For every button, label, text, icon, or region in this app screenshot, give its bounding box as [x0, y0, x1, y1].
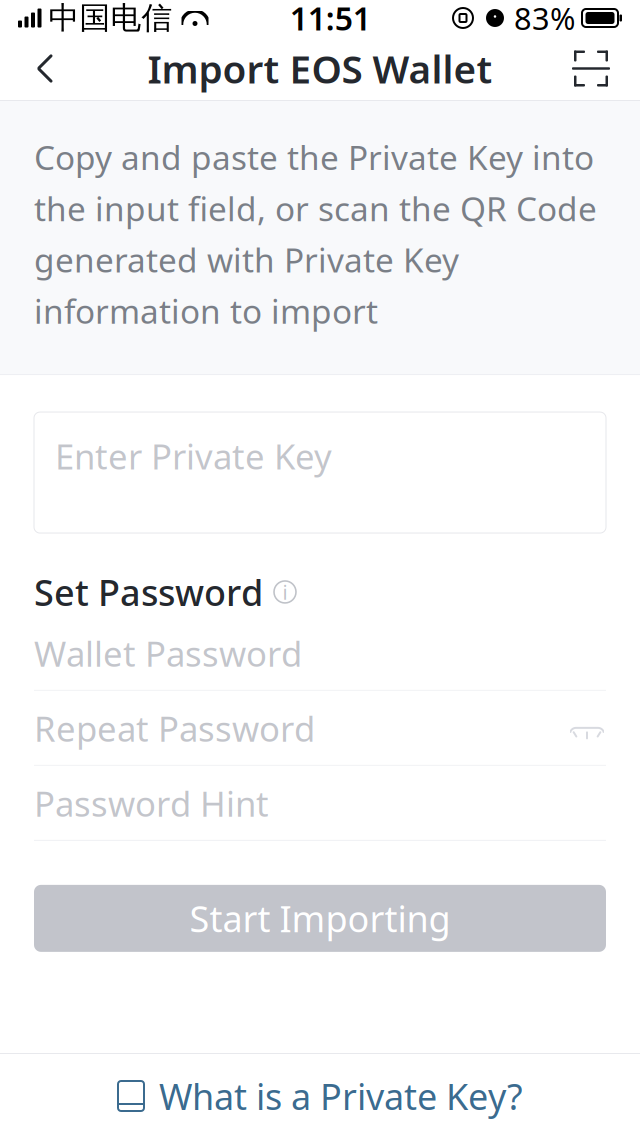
staticText: 中国电信	[48, 0, 172, 37]
staticText: i	[282, 579, 287, 605]
staticText: 11:51	[290, 0, 371, 39]
staticText: Import EOS Wallet	[147, 43, 492, 94]
staticText: Password Hint	[34, 780, 269, 826]
staticText: Copy and paste the Private Key into the …	[34, 135, 597, 333]
staticText: Enter Private Key	[55, 433, 332, 479]
staticText: Wallet Password	[34, 630, 302, 676]
button[interactable]: Repeat Password	[34, 691, 606, 766]
button[interactable]: Start Importing	[34, 885, 606, 952]
button[interactable]: Back	[14, 36, 76, 101]
staticText: Set Password	[34, 568, 263, 616]
staticText: Repeat Password	[34, 705, 315, 751]
button[interactable]: Scan QR Code	[556, 36, 626, 101]
staticText: What is a Private Key?	[159, 1072, 523, 1120]
staticText: Start Importing	[189, 894, 450, 942]
button[interactable]: Wallet Password	[34, 616, 606, 691]
staticText: 83%	[514, 0, 575, 38]
button[interactable]: Password Hint	[34, 766, 606, 841]
button[interactable]: What is a Private Key?	[0, 1054, 640, 1138]
